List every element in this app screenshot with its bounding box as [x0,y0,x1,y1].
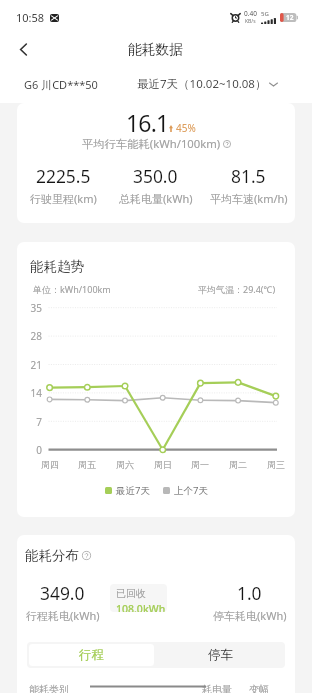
staticText: 平均气温：29.4(℃) [198,283,276,295]
staticText: 周二 [225,459,251,470]
staticText: 81.5 [231,164,266,188]
staticText: 最近7天（10.02~10.08） [137,76,267,92]
staticText: G6 川CD***50 [24,77,98,92]
button[interactable]: 最近7天（10.02~10.08） [137,76,278,92]
staticText: 变幅 [249,683,269,693]
staticText: 45% [176,121,196,135]
staticText: 12 [286,13,294,22]
staticText: 周日 [150,459,176,470]
staticText: 1.0 [237,581,262,605]
staticText: 周六 [112,459,138,470]
staticText: KB/s [245,18,256,25]
staticText: 能耗数据 [128,41,184,58]
staticText: 总耗电量(kWh) [119,191,193,206]
staticText: 35 [17,301,42,315]
staticText: 7 [17,415,42,429]
staticText: 耗电量 [202,683,232,693]
staticText: 上个7天 [174,484,208,497]
button[interactable]: Back [9,35,37,63]
staticText: 16.1 [126,107,169,138]
staticText: 10:58 [16,10,45,25]
button[interactable]: 停车 [156,642,285,668]
staticText: 平均行车能耗(kWh/100km) [82,136,221,151]
staticText: 14 [17,386,42,400]
staticText: 周一 [187,459,213,470]
staticText: 0.40 [244,9,257,18]
staticText: 5G [261,10,269,18]
staticText: 行程耗电(kWh) [26,608,100,623]
staticText: 能耗趋势 [30,258,84,275]
staticText: 周四 [37,459,63,470]
staticText: 停车耗电(kWh) [213,608,287,623]
staticText: 28 [17,329,42,343]
staticText: 最近7天 [116,484,150,497]
staticText: 停车 [208,647,233,663]
staticText: 350.0 [133,164,178,188]
button[interactable]: 行程 [29,644,154,666]
staticText: 周三 [263,459,289,470]
button[interactable]: G6 川CD***50 [24,77,98,92]
staticText: 349.0 [40,581,85,605]
staticText: 108.0kWh [116,602,166,612]
staticText: 能耗分布 [25,547,79,564]
staticText: 行程 [79,647,104,663]
staticText: 已回收 [116,587,146,600]
staticText: 能耗类别 [29,683,69,693]
staticText: 行驶里程(km) [30,191,97,206]
staticText: 周五 [74,459,100,470]
staticText: 21 [17,358,42,372]
staticText: 单位：kWh/100km [33,283,111,295]
staticText: 0 [17,443,42,457]
staticText: 平均车速(km/h) [210,191,288,206]
staticText: 2225.5 [36,164,91,188]
